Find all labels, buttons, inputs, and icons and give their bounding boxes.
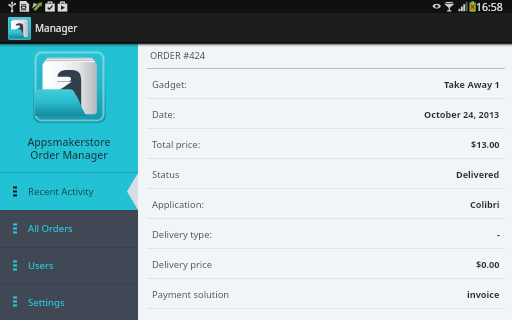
button[interactable]: Delivery price [138, 249, 512, 279]
staticText: Settings [28, 296, 65, 309]
staticText: Colibri [470, 198, 500, 210]
button[interactable]: All Orders [0, 210, 138, 247]
button[interactable]: Settings [0, 284, 138, 320]
staticText: Take Away 1 [444, 78, 500, 90]
staticText: Delivery price [152, 258, 213, 271]
button[interactable]: Payment solution [138, 279, 512, 309]
button[interactable]: Recent Activity [0, 173, 138, 210]
button[interactable]: Application: [138, 189, 512, 219]
staticText: Manager [35, 21, 78, 35]
staticText: All Orders [28, 222, 73, 235]
staticText: Users [28, 259, 54, 272]
staticText: Date: [152, 108, 176, 121]
staticText: Application: [152, 198, 204, 211]
staticText: Payment solution [152, 288, 230, 301]
button[interactable]: Gadget: [138, 69, 512, 99]
staticText: Total price: [152, 138, 201, 151]
staticText: 16:58 [476, 0, 503, 13]
staticText: Appsmakerstore Order Manager [27, 135, 111, 162]
staticText: Delivered [456, 168, 500, 180]
staticText: Status [152, 168, 180, 181]
staticText: invoice [467, 288, 500, 300]
staticText: Gadget: [152, 78, 187, 91]
staticText: Delivery type: [152, 228, 212, 241]
button[interactable]: Status [138, 159, 512, 189]
staticText: $0.00 [476, 258, 500, 270]
staticText: - [497, 228, 500, 240]
staticText: Recent Activity [28, 185, 94, 198]
staticText: ORDER #424 [150, 49, 206, 62]
button[interactable]: Delivery type: [138, 219, 512, 249]
staticText: $13.00 [471, 138, 500, 150]
button[interactable]: Date: [138, 99, 512, 129]
button[interactable]: Users [0, 247, 138, 284]
staticText: October 24, 2013 [424, 108, 500, 120]
button[interactable]: Total price: [138, 129, 512, 159]
